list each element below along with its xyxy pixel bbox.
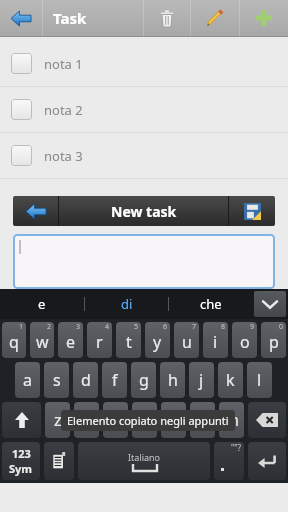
staticText: n (198, 409, 208, 431)
button[interactable]: New task (59, 196, 228, 226)
staticText: e (66, 331, 76, 353)
staticText: v (140, 409, 149, 431)
staticText: s (53, 369, 61, 391)
button[interactable]: 8 (203, 322, 228, 358)
button[interactable]: j (189, 362, 214, 398)
button[interactable]: Shift (2, 402, 41, 438)
staticText: j (199, 369, 204, 391)
staticText: 5 (134, 322, 139, 332)
staticText: a (23, 369, 32, 391)
button[interactable]: 7 (174, 322, 199, 358)
button[interactable]: b (161, 402, 186, 438)
staticText: e (38, 295, 46, 313)
button[interactable]: a (15, 362, 40, 398)
button[interactable]: l (247, 362, 272, 398)
button[interactable]: h (160, 362, 185, 398)
staticText: 123 (12, 446, 31, 461)
button[interactable]: Edit (191, 0, 239, 36)
button[interactable]: 1 (2, 322, 26, 358)
button[interactable]: 3 (58, 322, 83, 358)
staticText: x (82, 409, 91, 431)
staticText: Italiano (128, 451, 161, 463)
staticText: nota 3 (44, 147, 83, 165)
staticText: di (121, 295, 133, 313)
staticText: l (257, 369, 262, 391)
button[interactable]: n (190, 402, 215, 438)
button[interactable]: g (131, 362, 156, 398)
button[interactable]: Delete (144, 0, 190, 36)
staticText: f (112, 369, 118, 391)
staticText: c (112, 409, 120, 431)
staticText: 8 (221, 322, 226, 332)
button[interactable]: 0 (261, 322, 286, 358)
button[interactable]: v (132, 402, 157, 438)
button[interactable] (13, 234, 275, 289)
button[interactable]: nota 3 (0, 133, 288, 178)
staticText: t (126, 331, 132, 353)
staticText: h (168, 369, 178, 391)
button[interactable]: Space (78, 442, 210, 480)
staticText: m (224, 409, 239, 431)
staticText: b (169, 409, 179, 431)
button[interactable]: e (0, 289, 84, 319)
staticText: 0 (279, 322, 284, 332)
button[interactable]: Save (229, 196, 275, 226)
staticText: Sym (9, 461, 33, 476)
button[interactable]: Task (53, 0, 143, 36)
staticText: g (139, 369, 149, 391)
button[interactable]: 5 (116, 322, 141, 358)
button[interactable]: 6 (145, 322, 170, 358)
staticText: Elemento copiato negli appunti (67, 413, 229, 428)
button[interactable]: s (44, 362, 69, 398)
staticText: che (200, 295, 222, 313)
button[interactable]: nota 2 (0, 87, 288, 132)
staticText: i (213, 331, 218, 353)
button[interactable]: Back (13, 196, 58, 226)
staticText: u (182, 331, 192, 353)
button[interactable]: 9 (232, 322, 257, 358)
staticText: d (81, 369, 91, 391)
staticText: k (226, 369, 235, 391)
staticText: r (96, 331, 103, 353)
button[interactable]: z (45, 402, 70, 438)
staticText: p (269, 331, 279, 353)
staticText: o (240, 331, 250, 353)
button[interactable]: Period (214, 442, 244, 480)
button[interactable]: Voice input (44, 442, 74, 480)
button[interactable]: di (85, 289, 168, 319)
staticText: w (36, 331, 49, 353)
staticText: Task (53, 8, 87, 28)
staticText: 6 (163, 322, 168, 332)
button[interactable]: 4 (87, 322, 112, 358)
button[interactable]: 2 (30, 322, 54, 358)
button[interactable]: d (73, 362, 98, 398)
button[interactable]: Backspace (248, 402, 286, 438)
button[interactable]: Add (240, 0, 288, 36)
staticText: z (54, 409, 62, 431)
staticText: ""? (231, 442, 241, 453)
staticText: 9 (250, 322, 255, 332)
staticText: 3 (76, 322, 81, 332)
button[interactable]: nota 1 (0, 41, 288, 86)
staticText: New task (111, 202, 177, 221)
button[interactable]: Enter (248, 442, 286, 480)
staticText: nota 1 (44, 55, 83, 73)
staticText: 1 (19, 322, 24, 332)
button[interactable]: c (103, 402, 128, 438)
staticText: q (9, 331, 19, 353)
button[interactable]: Back (0, 0, 42, 36)
button[interactable]: More suggestions (254, 291, 286, 317)
button[interactable]: che (169, 289, 252, 319)
button[interactable]: x (74, 402, 99, 438)
button[interactable]: m (219, 402, 244, 438)
button[interactable]: f (102, 362, 127, 398)
staticText: 4 (105, 322, 110, 332)
button[interactable]: k (218, 362, 243, 398)
button[interactable]: Symbols (2, 442, 40, 480)
staticText: 2 (47, 322, 52, 332)
staticText: 7 (192, 322, 197, 332)
staticText: nota 2 (44, 101, 83, 119)
staticText: y (153, 331, 162, 353)
